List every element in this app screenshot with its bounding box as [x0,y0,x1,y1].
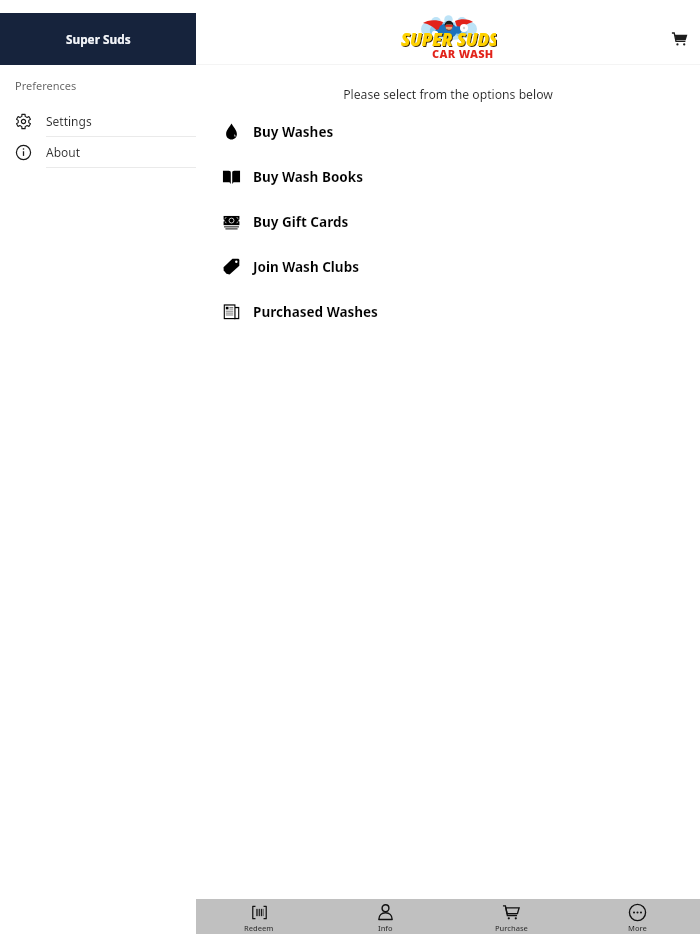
staticText: Redeem [244,923,274,933]
button[interactable]: More [574,899,700,934]
staticText: Buy Gift Cards [253,213,349,231]
staticText: Join Wash Clubs [253,258,359,276]
button[interactable]: Redeem [196,899,322,934]
button[interactable]: Super Suds [0,13,196,65]
staticText: Buy Wash Books [253,168,363,186]
button[interactable]: Purchased Washes [196,289,700,334]
staticText: Purchase [495,923,528,933]
button[interactable]: Info [322,899,448,934]
staticText: SUPER SUDS [402,29,497,52]
button[interactable]: Join Wash Clubs [196,244,700,289]
staticText: Purchased Washes [253,303,378,321]
button[interactable]: Buy Wash Books [196,154,700,199]
staticText: SUPER SUDS [401,28,496,51]
staticText: Super Suds [66,31,131,47]
button[interactable]: About [0,137,196,167]
staticText: CAR WASH [432,46,494,61]
staticText: Preferences [15,78,77,93]
staticText: More [628,923,647,933]
button[interactable]: Purchase [448,899,574,934]
staticText: Info [378,923,393,933]
staticText: Please select from the options below [196,86,700,103]
staticText: Buy Washes [253,123,334,141]
button[interactable]: Settings [0,106,196,136]
staticText: Settings [46,113,92,129]
staticText: About [46,144,81,160]
button[interactable]: Buy Gift Cards [196,199,700,244]
button[interactable]: Shopping cart [660,19,700,59]
button[interactable]: Buy Washes [196,109,700,154]
